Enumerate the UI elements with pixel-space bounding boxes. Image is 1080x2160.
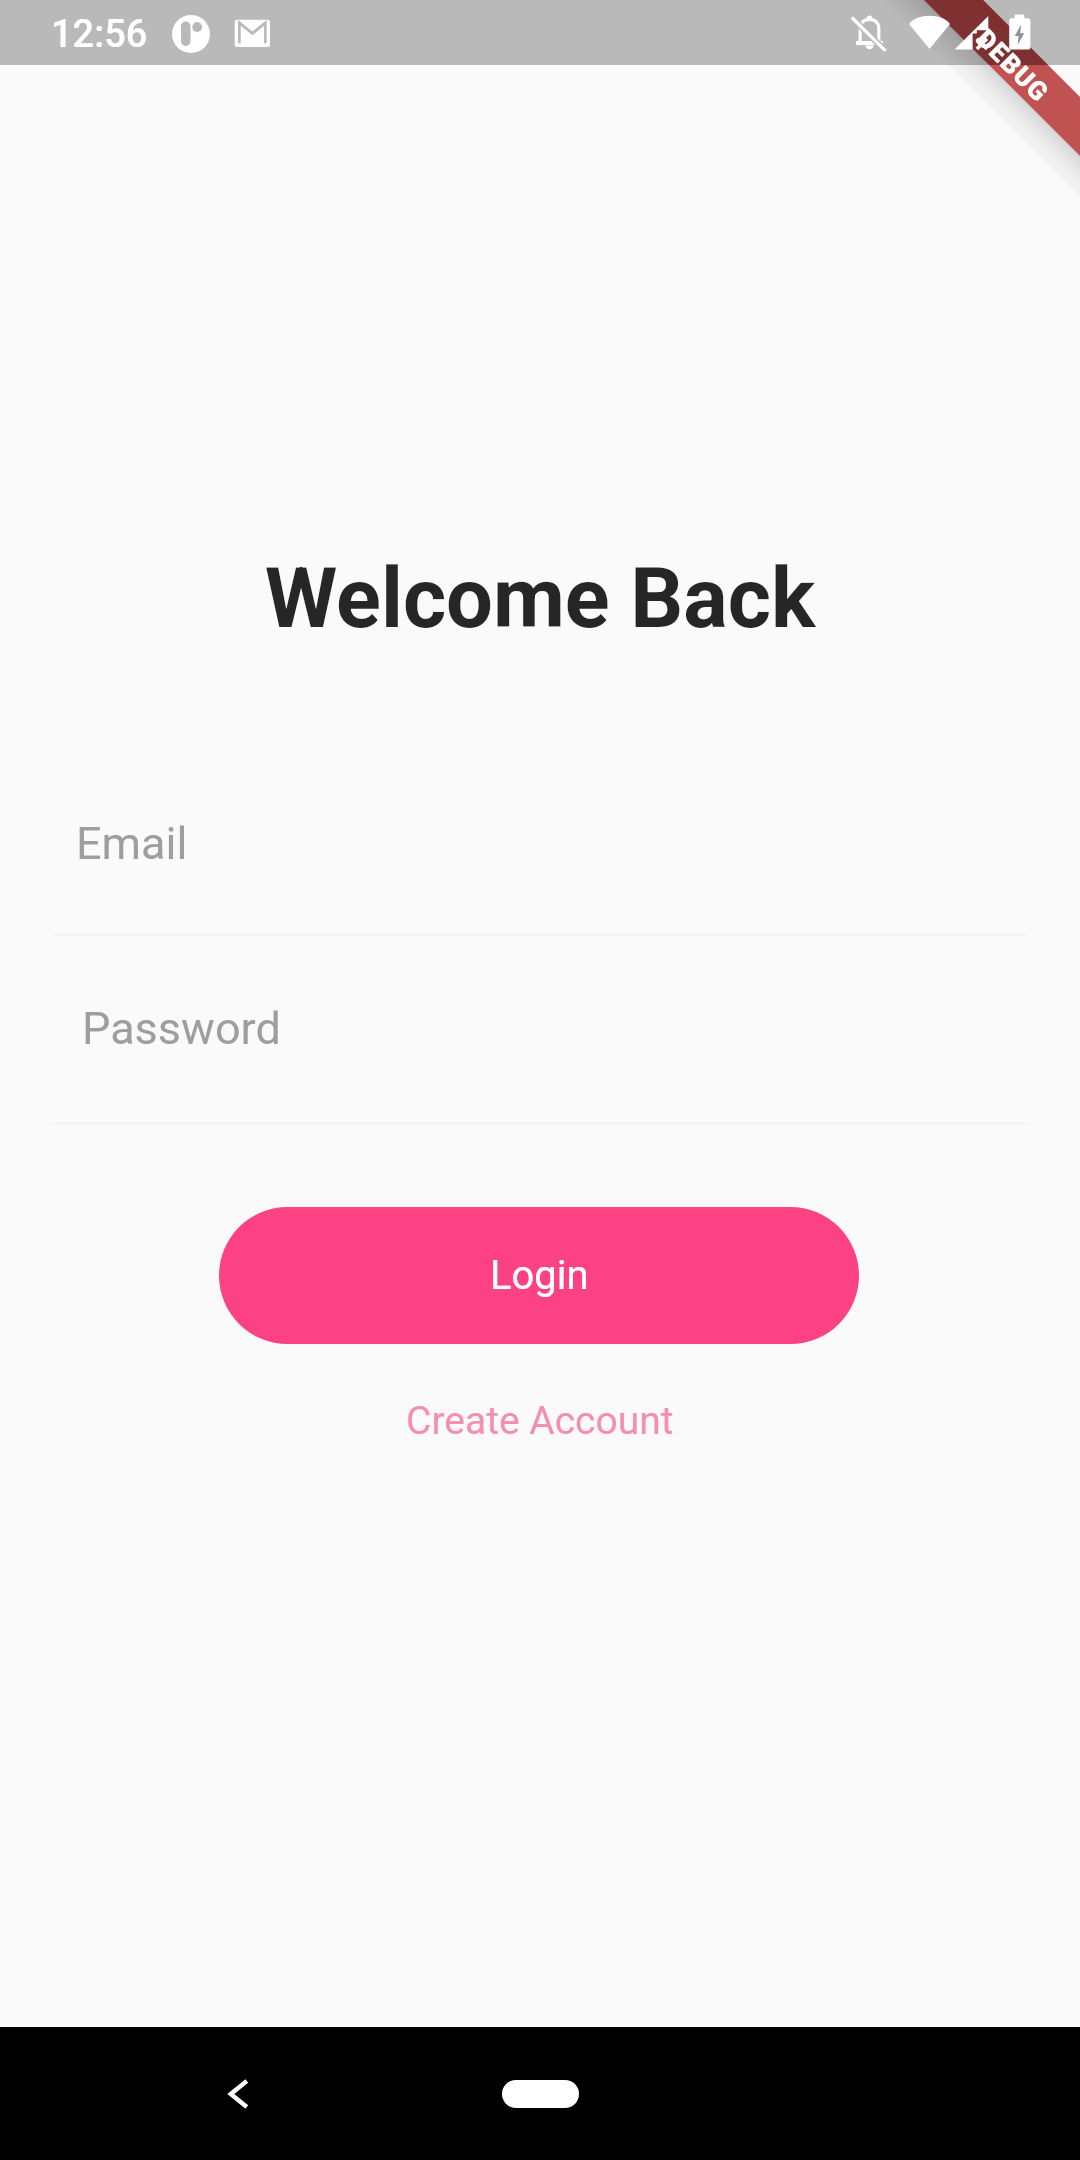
staticText: Welcome Back — [0, 550, 1080, 647]
staticText: Login — [490, 1252, 589, 1299]
staticText: DEBUG — [971, 24, 1055, 108]
button[interactable]: Password — [55, 1042, 1025, 1125]
staticText: Password — [82, 1002, 281, 1055]
button[interactable]: Back — [189, 2044, 289, 2144]
staticText: 12:56 — [51, 12, 148, 57]
staticText: Email — [76, 817, 188, 870]
button[interactable]: Email — [55, 853, 1025, 936]
button[interactable]: Login — [219, 1207, 859, 1344]
button[interactable]: Create Account — [378, 1386, 702, 1456]
staticText: Create Account — [406, 1398, 674, 1444]
button[interactable]: Home — [480, 2059, 600, 2129]
